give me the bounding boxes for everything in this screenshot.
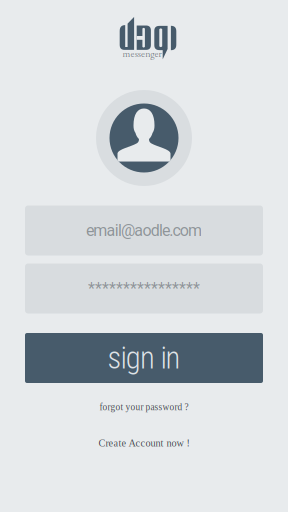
staticText: **************** [88, 279, 200, 298]
staticText: messenger [122, 47, 162, 60]
button[interactable]: **************** [25, 263, 263, 313]
staticText: forgot your password ? [99, 402, 188, 412]
button[interactable]: sign in [25, 333, 263, 383]
staticText: sign in [107, 340, 181, 376]
staticText: email@aodle.com [86, 221, 202, 240]
button[interactable]: Create Account now ! [92, 431, 195, 455]
button[interactable]: forgot your password ? [93, 396, 194, 418]
staticText: Create Account now ! [98, 437, 189, 449]
button[interactable]: email@aodle.com [25, 205, 263, 255]
